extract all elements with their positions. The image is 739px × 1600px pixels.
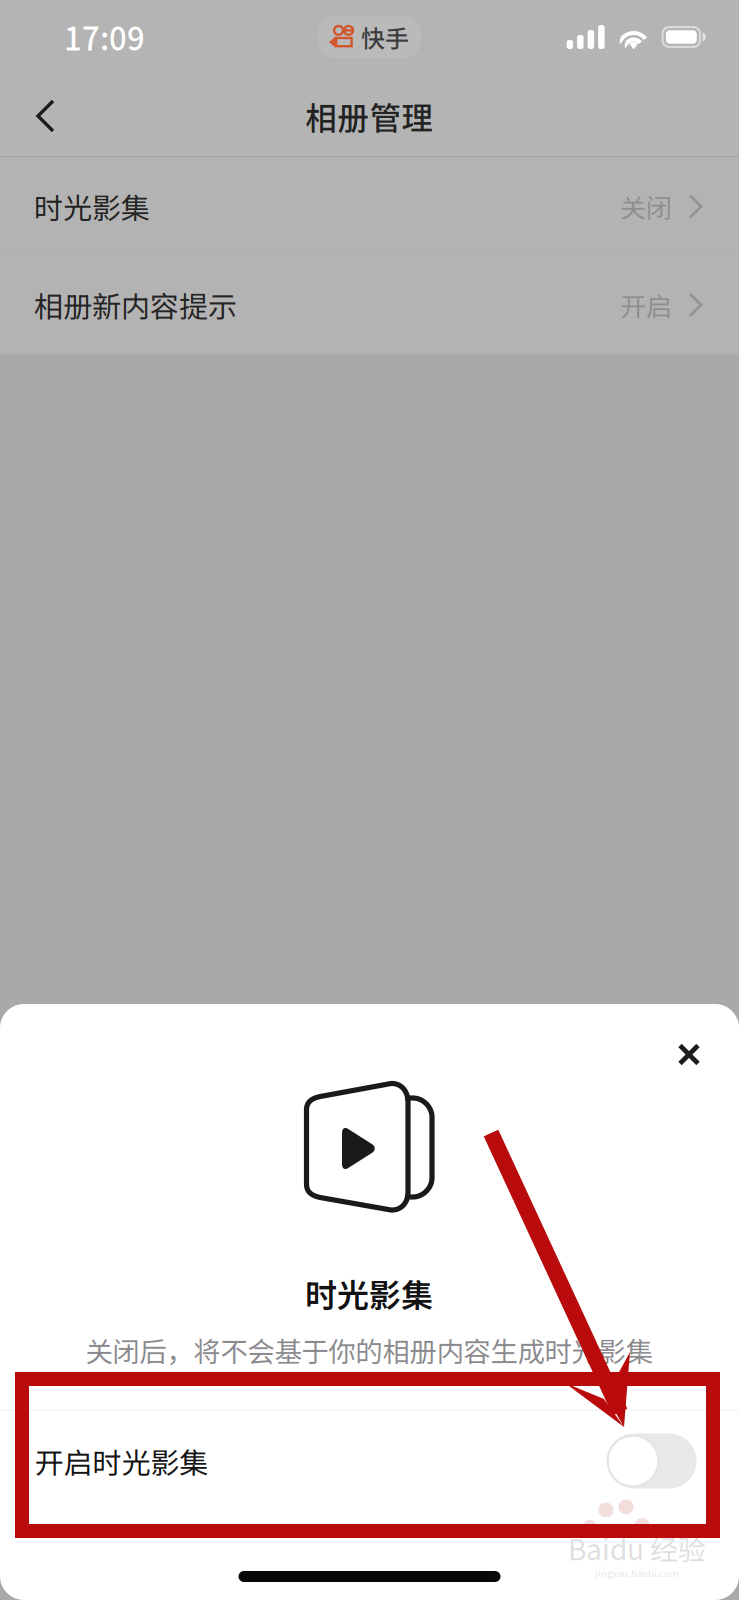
staticText: 开启 [620,286,672,324]
button[interactable]: 时光影集 [0,157,739,256]
staticText: 相册管理 [305,93,433,139]
staticText: Baidu 经验 [568,1528,706,1568]
staticText: 时光影集 [305,1270,433,1316]
button[interactable]: 关闭 [651,1016,727,1092]
staticText: 开启时光影集 [34,1440,208,1482]
staticText: 相册新内容提示 [34,284,237,326]
staticText: 17:09 [64,15,145,59]
button[interactable]: 相册新内容提示 [0,256,739,354]
staticText: 时光影集 [34,185,150,227]
button[interactable]: 开启时光影集 [0,1401,738,1521]
staticText: 关闭 [620,188,672,225]
staticText: 快手 [361,20,409,54]
staticText: 关闭后，将不会基于你的相册内容生成时光影集 [85,1330,652,1370]
staticText: jingyan.baidu.com [595,1566,679,1580]
button[interactable]: 返回 [0,77,85,155]
